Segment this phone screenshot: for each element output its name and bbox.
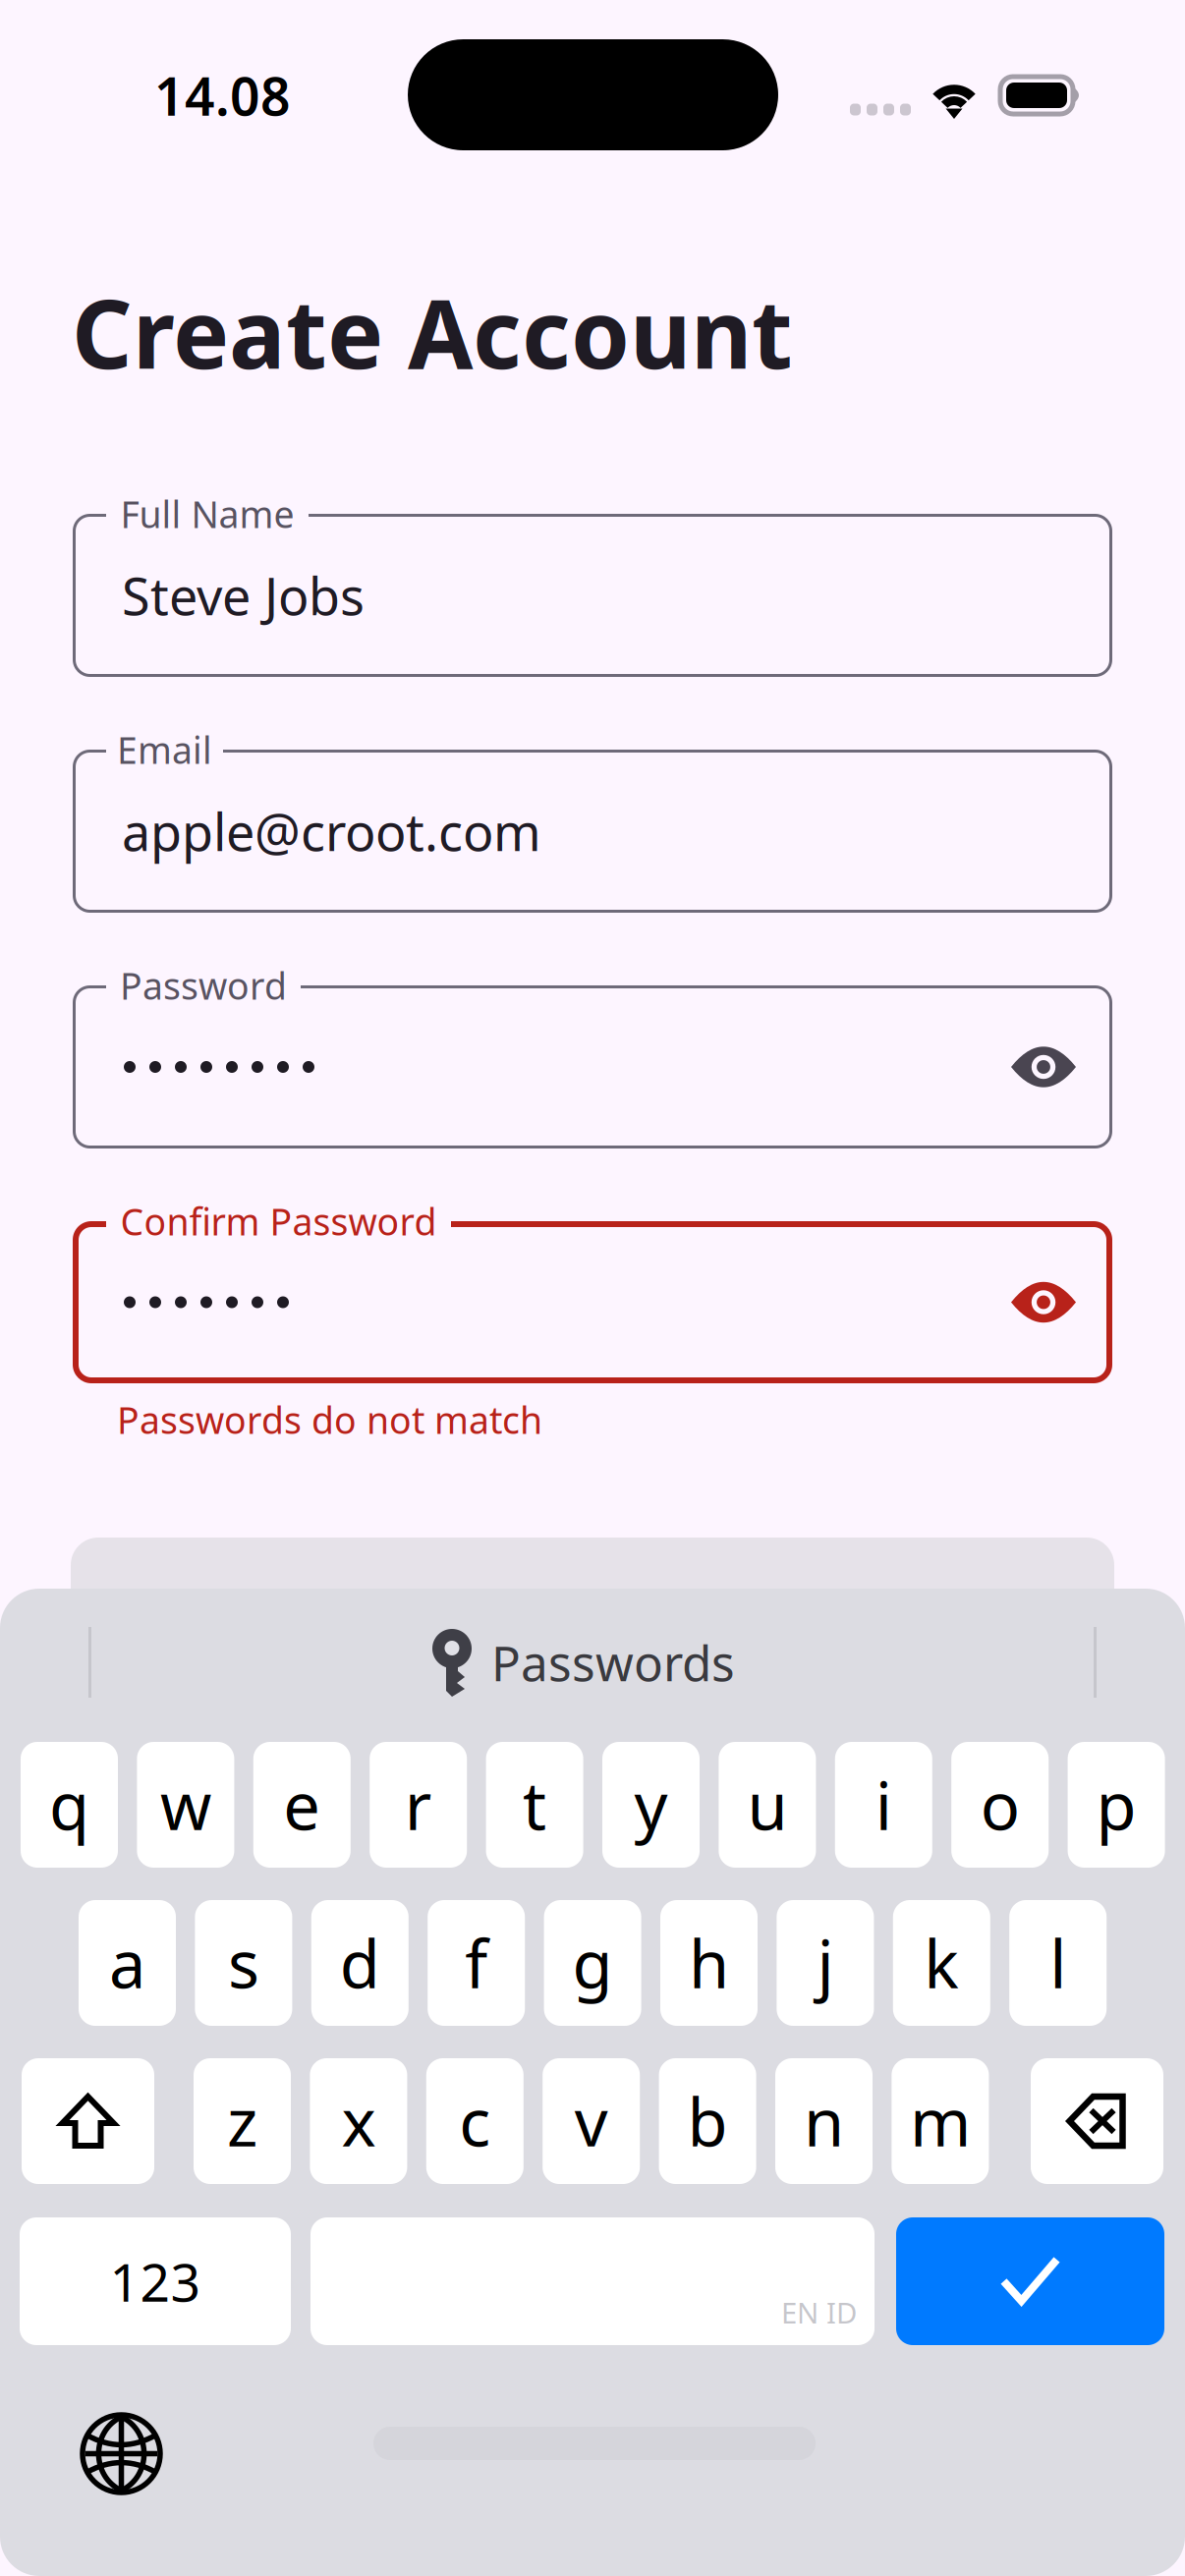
staticText: q xyxy=(49,1761,89,1848)
staticText: EN ID xyxy=(781,2293,857,2331)
staticText: Confirm Password xyxy=(120,1197,437,1246)
button[interactable]: e xyxy=(253,1742,351,1868)
button[interactable]: p xyxy=(1068,1742,1165,1868)
button[interactable]: k xyxy=(893,1900,990,2026)
button[interactable]: b xyxy=(659,2058,756,2184)
staticText: g xyxy=(572,1919,613,2006)
button[interactable]: r xyxy=(370,1742,467,1868)
button[interactable]: Change keyboard xyxy=(83,2415,169,2501)
staticText: z xyxy=(227,2078,257,2165)
button[interactable]: t xyxy=(486,1742,583,1868)
staticText: y xyxy=(634,1761,668,1848)
button[interactable]: Show password xyxy=(999,1278,1088,1327)
staticText: r xyxy=(405,1761,432,1848)
button[interactable] xyxy=(22,2058,154,2184)
staticText: l xyxy=(1050,1919,1066,2006)
staticText: 14.08 xyxy=(154,61,291,130)
button[interactable]: m xyxy=(892,2058,989,2184)
button[interactable]: q xyxy=(21,1742,118,1868)
staticText: Full Name xyxy=(120,489,294,538)
button[interactable]: c xyxy=(426,2058,524,2184)
staticText: n xyxy=(804,2078,844,2165)
button[interactable]: z xyxy=(194,2058,291,2184)
staticText: h xyxy=(689,1919,729,2006)
staticText: Password xyxy=(120,961,287,1010)
button[interactable]: w xyxy=(137,1742,234,1868)
button[interactable]: a xyxy=(79,1900,176,2026)
staticText: Steve Jobs xyxy=(122,561,365,629)
button[interactable]: g xyxy=(544,1900,641,2026)
staticText: Passwords xyxy=(491,1630,735,1694)
button[interactable]: u xyxy=(719,1742,816,1868)
button[interactable]: 123 xyxy=(20,2217,291,2345)
staticText: m xyxy=(910,2078,971,2165)
button[interactable] xyxy=(896,2217,1164,2345)
staticText: k xyxy=(924,1919,959,2006)
staticText: t xyxy=(523,1761,546,1848)
button[interactable]: EN ID xyxy=(310,2217,875,2345)
staticText: a xyxy=(109,1919,145,2006)
staticText: s xyxy=(228,1919,259,2006)
staticText: d xyxy=(340,1919,380,2006)
button[interactable]: l xyxy=(1009,1900,1107,2026)
button[interactable]: v xyxy=(543,2058,640,2184)
button[interactable]: h xyxy=(660,1900,758,2026)
button[interactable]: s xyxy=(195,1900,292,2026)
button[interactable]: n xyxy=(775,2058,873,2184)
staticText: Create Account xyxy=(72,269,793,395)
staticText: p xyxy=(1096,1761,1136,1848)
button[interactable]: Show password xyxy=(999,1042,1088,1092)
button[interactable] xyxy=(1031,2058,1163,2184)
staticText: f xyxy=(465,1919,488,2006)
staticText: Email xyxy=(117,725,212,774)
button[interactable]: y xyxy=(602,1742,700,1868)
button[interactable]: d xyxy=(311,1900,409,2026)
button[interactable]: Passwords xyxy=(432,1621,845,1704)
staticText: 123 xyxy=(110,2246,201,2316)
staticText: x xyxy=(341,2078,376,2165)
staticText: o xyxy=(980,1761,1020,1848)
staticText: u xyxy=(747,1761,787,1848)
staticText: i xyxy=(875,1761,892,1848)
button[interactable]: o xyxy=(951,1742,1049,1868)
staticText: apple@croot.com xyxy=(122,797,541,865)
button[interactable]: j xyxy=(777,1900,874,2026)
staticText: e xyxy=(283,1761,321,1848)
staticText: v xyxy=(575,2078,608,2165)
staticText: c xyxy=(459,2078,491,2165)
staticText: Passwords do not match xyxy=(117,1395,542,1444)
button[interactable]: i xyxy=(835,1742,932,1868)
staticText: w xyxy=(160,1761,211,1848)
button[interactable]: x xyxy=(310,2058,407,2184)
staticText: b xyxy=(687,2078,728,2165)
staticText: j xyxy=(817,1919,834,2006)
button[interactable]: f xyxy=(428,1900,525,2026)
